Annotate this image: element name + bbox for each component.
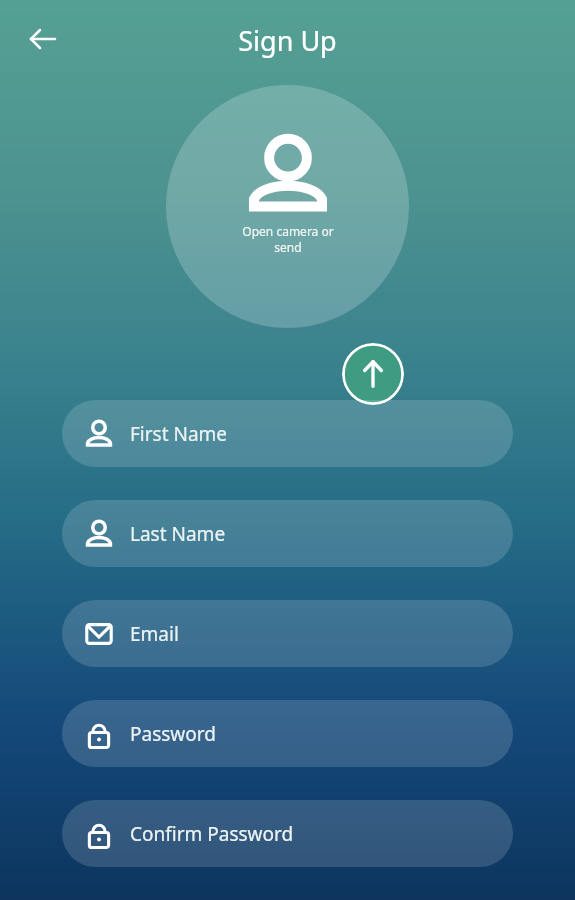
button[interactable]: Last Name [62,500,513,567]
staticText: Confirm Password [130,821,294,847]
staticText: Email [130,621,179,647]
button[interactable]: Upload photo [342,343,404,405]
staticText: Last Name [130,521,226,547]
staticText: First Name [130,421,228,447]
staticText: Password [130,721,216,747]
button[interactable]: Password [62,700,513,767]
button[interactable]: First Name [62,400,513,467]
button[interactable]: Profile photo [166,85,409,328]
button[interactable]: Email [62,600,513,667]
staticText: Sign Up [238,22,337,59]
button[interactable]: Back [18,14,68,64]
staticText: Open camera or send [232,223,344,255]
button[interactable]: Confirm Password [62,800,513,867]
